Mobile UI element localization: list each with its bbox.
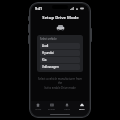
staticText: Select a vehicle manufacturer from the — [38, 77, 82, 85]
other: Vehicle — [56, 24, 65, 31]
button[interactable]: Audi — [40, 43, 80, 49]
button[interactable]: Kia — [40, 57, 80, 63]
button[interactable]: Alerts — [59, 101, 74, 112]
staticText: Kia — [42, 58, 47, 62]
staticText: Drive — [79, 108, 85, 111]
staticText: Hyundai — [42, 51, 54, 55]
staticText: Select vehicle — [40, 37, 57, 41]
button[interactable]: Routes — [45, 101, 59, 112]
staticText: Audi — [42, 44, 49, 48]
staticText: Routes — [48, 108, 56, 111]
staticText: Setup Drive Mode — [42, 15, 79, 21]
staticText: Volkswagen — [42, 65, 59, 69]
button[interactable]: Hyundai — [40, 50, 80, 56]
staticText: Alerts — [64, 108, 70, 111]
button[interactable]: Drive — [74, 101, 89, 112]
button[interactable]: Volkswagen — [40, 64, 80, 70]
staticText: list to enable Drive mode — [44, 86, 76, 90]
button[interactable]: Home — [31, 101, 45, 112]
staticText: 9:41 — [35, 6, 42, 11]
staticText: Home — [35, 108, 42, 111]
